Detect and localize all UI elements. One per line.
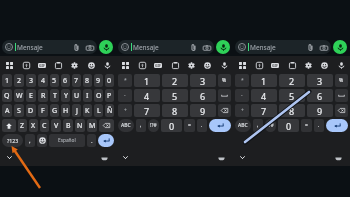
button[interactable]: , (253, 119, 263, 132)
button[interactable]: E (26, 89, 36, 102)
button[interactable]: 1 (251, 74, 277, 87)
button[interactable]: GIF (151, 58, 165, 72)
button[interactable]: 5 (279, 89, 305, 102)
button[interactable]: Stickers (252, 58, 266, 72)
button[interactable]: Apps (235, 58, 249, 72)
button[interactable]: L (94, 104, 103, 117)
button[interactable]: 0 (278, 119, 299, 132)
button[interactable]: Voice message (333, 40, 347, 54)
button[interactable]: Mensaje (118, 40, 214, 54)
button[interactable]: 6 (307, 89, 333, 102)
button[interactable]: Home (98, 151, 110, 163)
button[interactable]: !?# (148, 119, 159, 132)
button[interactable]: GIF (35, 58, 49, 72)
button[interactable]: Ñ (105, 104, 114, 117)
button[interactable]: 2 (14, 74, 24, 87)
button[interactable]: 3 (26, 74, 36, 87)
button[interactable]: . (197, 119, 207, 132)
button[interactable]: Camera (84, 42, 95, 53)
button[interactable] (218, 104, 231, 117)
button[interactable]: V (51, 119, 61, 132)
button[interactable]: J (72, 104, 81, 117)
button[interactable]: 2 (279, 74, 305, 87)
button[interactable]: R (38, 89, 48, 102)
button[interactable]: X (29, 119, 38, 132)
button[interactable]: G (50, 104, 59, 117)
button[interactable]: H (61, 104, 70, 117)
button[interactable]: Attach file (71, 42, 82, 53)
button[interactable]: Hide keyboard (3, 151, 15, 163)
button[interactable]: 9 (190, 104, 216, 117)
button[interactable]: ABC (235, 119, 251, 132)
button[interactable]: Clipboard (168, 58, 182, 72)
button[interactable]: , (136, 119, 146, 132)
button[interactable]: F (38, 104, 48, 117)
button[interactable]: !?# (265, 119, 276, 132)
button[interactable]: O (94, 89, 103, 102)
button[interactable] (99, 119, 114, 132)
button[interactable]: 0 (161, 119, 182, 132)
button[interactable]: 1 (134, 74, 160, 87)
button[interactable]: 2 (162, 74, 188, 87)
button[interactable]: * (235, 74, 249, 87)
button[interactable]: , (25, 134, 35, 147)
button[interactable]: Mensaje (235, 40, 331, 54)
button[interactable]: 7 (134, 104, 160, 117)
button[interactable]: P (105, 89, 114, 102)
button[interactable]: 9 (94, 74, 103, 87)
button[interactable]: 1 (2, 74, 12, 87)
button[interactable]: Attach file (188, 42, 199, 53)
button[interactable]: 4 (38, 74, 48, 87)
button[interactable]: 9 (307, 104, 333, 117)
button[interactable]: 7 (72, 74, 81, 87)
button[interactable]: Emoji (200, 58, 214, 72)
button[interactable]: 6 (61, 74, 70, 87)
button[interactable]: 4 (251, 89, 277, 102)
button[interactable]: K (83, 104, 92, 117)
button[interactable]: Home (215, 151, 227, 163)
button[interactable]: Voice input (217, 58, 231, 72)
button[interactable]: GIF (268, 58, 282, 72)
button[interactable]: Voice input (100, 58, 114, 72)
button[interactable] (326, 119, 348, 132)
button[interactable]: ABC (118, 119, 134, 132)
button[interactable] (37, 134, 47, 147)
button[interactable]: Apps (118, 58, 132, 72)
button[interactable]: % (218, 74, 231, 87)
button[interactable]: 8 (83, 74, 92, 87)
button[interactable] (209, 119, 231, 132)
button[interactable]: Attach file (305, 42, 316, 53)
button[interactable]: 5 (162, 89, 188, 102)
button[interactable]: Stickers (135, 58, 149, 72)
button[interactable]: ?123 (2, 134, 23, 147)
button[interactable] (98, 134, 114, 147)
button[interactable]: Mensaje (2, 40, 97, 54)
button[interactable]: 7 (251, 104, 277, 117)
button[interactable]: + (118, 104, 132, 117)
button[interactable]: Settings (67, 58, 81, 72)
button[interactable]: . (314, 119, 324, 132)
button[interactable]: Clipboard (51, 58, 65, 72)
button[interactable] (218, 89, 231, 102)
button[interactable]: Z (18, 119, 27, 132)
button[interactable]: Camera (201, 42, 212, 53)
button[interactable]: * (118, 74, 132, 87)
button[interactable]: Español (49, 134, 85, 147)
button[interactable]: 3 (307, 74, 333, 87)
button[interactable]: Voice input (334, 58, 348, 72)
button[interactable]: Settings (184, 58, 198, 72)
button[interactable]: Hide keyboard (119, 151, 131, 163)
button[interactable]: Home (332, 151, 344, 163)
button[interactable]: 5 (50, 74, 59, 87)
button[interactable]: 6 (190, 89, 216, 102)
button[interactable]: Emoji (84, 58, 98, 72)
button[interactable]: = (301, 119, 312, 132)
button[interactable]: Clipboard (285, 58, 299, 72)
button[interactable]: Apps (2, 58, 16, 72)
button[interactable]: + (235, 104, 249, 117)
button[interactable] (335, 89, 348, 102)
button[interactable]: C (40, 119, 49, 132)
button[interactable]: Emoji (317, 58, 331, 72)
button[interactable]: - (235, 89, 249, 102)
button[interactable]: 4 (134, 89, 160, 102)
